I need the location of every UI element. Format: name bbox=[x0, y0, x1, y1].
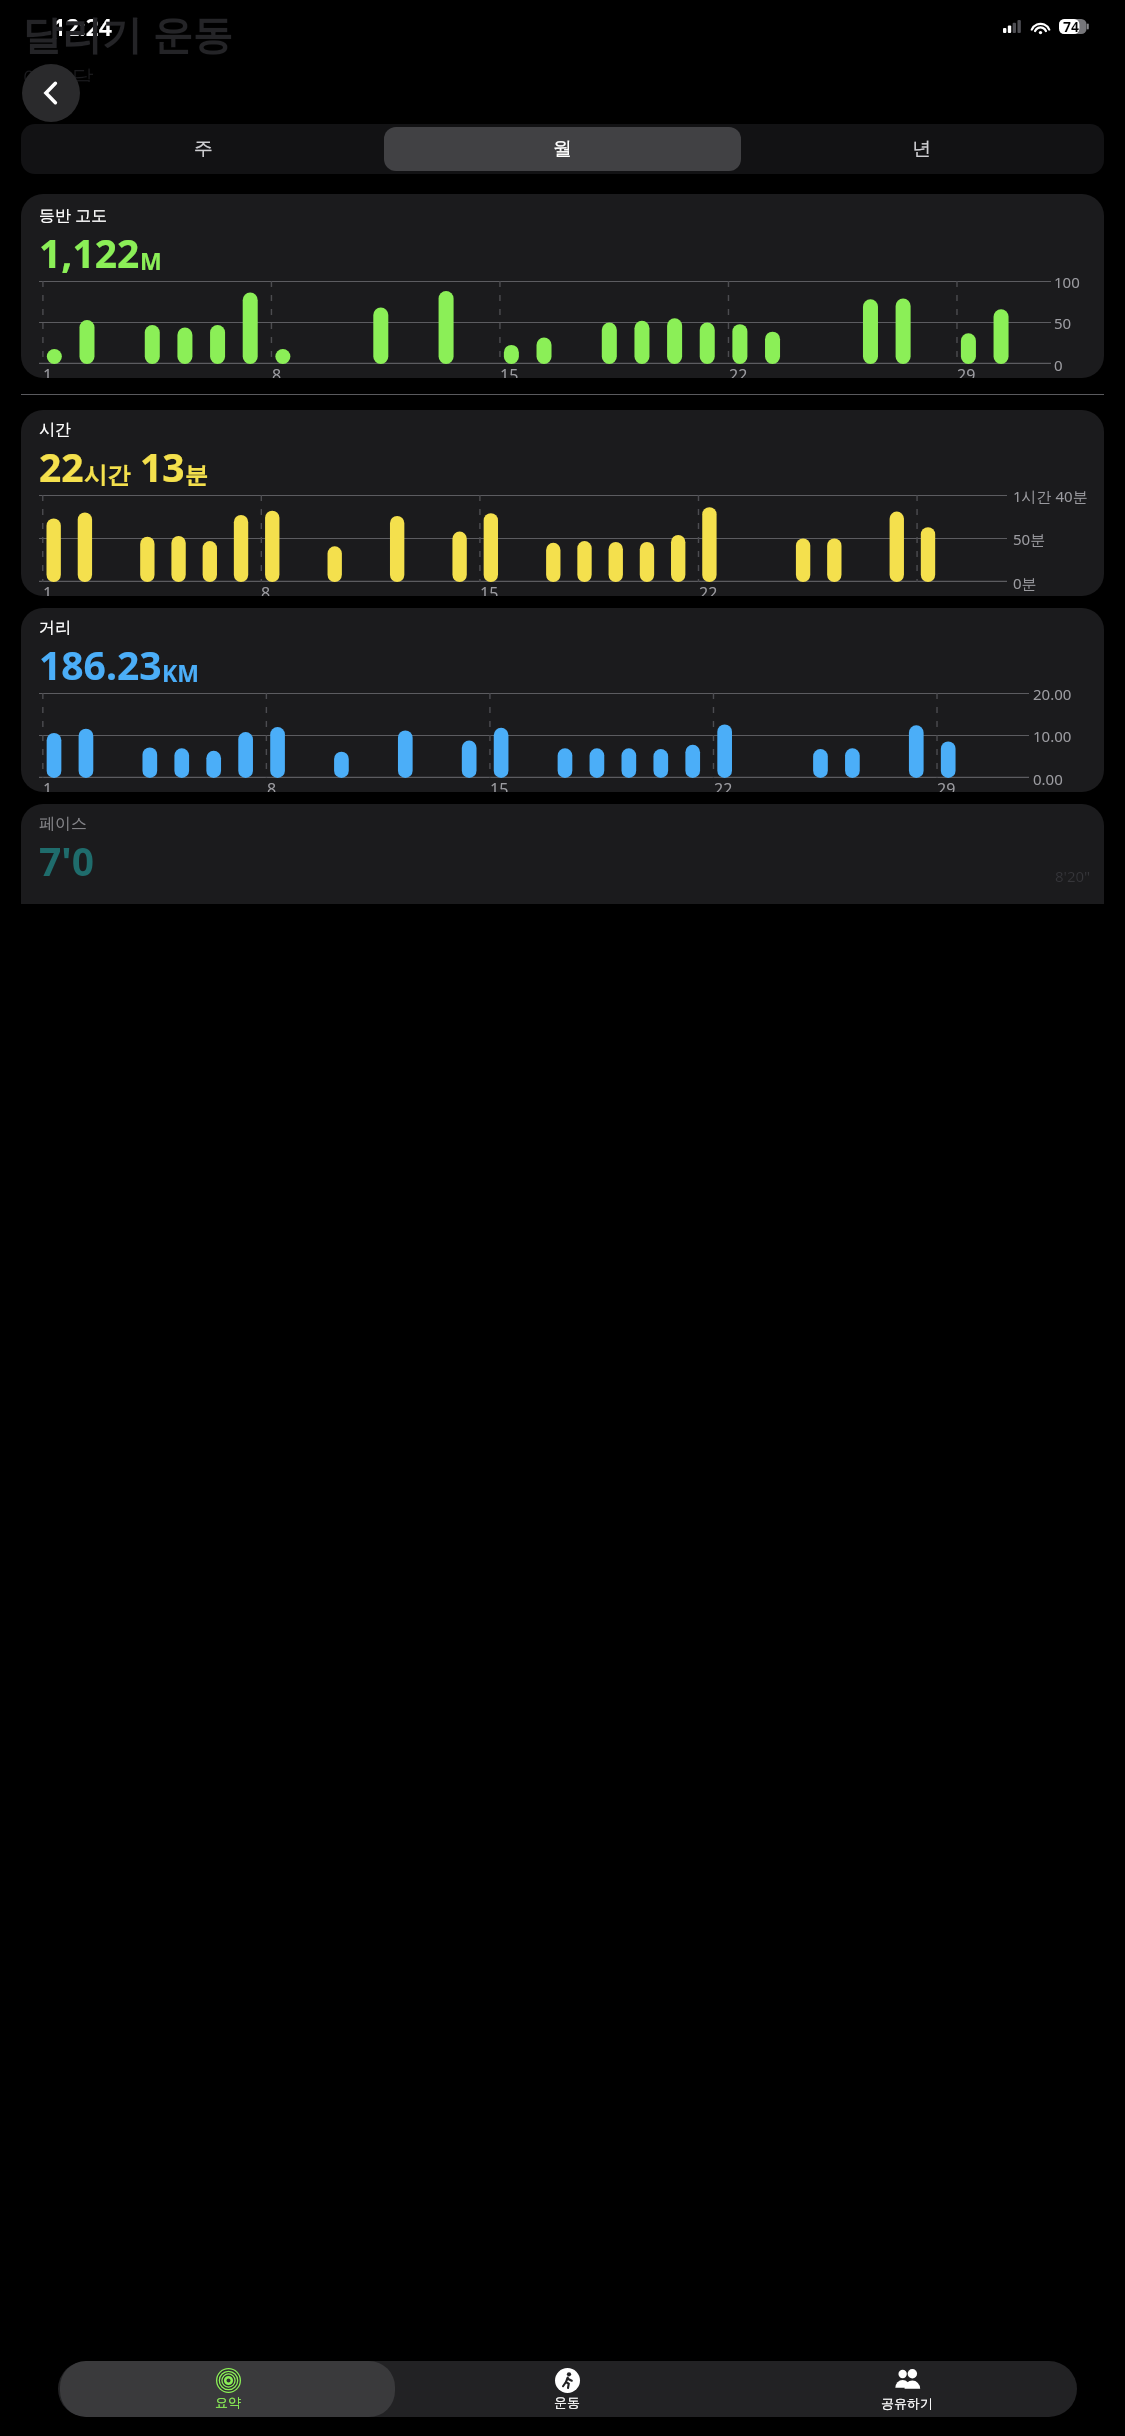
button[interactable]: 운동 bbox=[397, 2361, 737, 2417]
button[interactable]: 요약 bbox=[60, 2361, 395, 2417]
staticText: 29 bbox=[937, 778, 956, 792]
staticText: 시간 bbox=[84, 461, 130, 490]
staticText: 1 bbox=[43, 364, 53, 378]
button[interactable]: 등반 고도 bbox=[21, 194, 1104, 378]
staticText: 15 bbox=[490, 778, 509, 792]
staticText: 10.00 bbox=[1033, 726, 1072, 746]
staticText: 15 bbox=[500, 364, 519, 378]
staticText: 등반 고도 bbox=[39, 204, 108, 226]
staticText: 공유하기 bbox=[881, 2395, 933, 2411]
staticText: 74 bbox=[1063, 17, 1080, 36]
staticText: 22 bbox=[729, 364, 748, 378]
staticText: 100 bbox=[1054, 272, 1080, 292]
staticText: 186.23 bbox=[39, 638, 162, 691]
staticText: 0.00 bbox=[1033, 769, 1063, 789]
staticText: 달리기 운동 bbox=[22, 6, 233, 61]
staticText: 요약 bbox=[215, 2394, 241, 2410]
staticText: 15 bbox=[480, 582, 499, 596]
button[interactable]: 년 bbox=[743, 127, 1100, 171]
staticText: 분 bbox=[185, 461, 208, 490]
staticText: 1 bbox=[43, 778, 53, 792]
staticText: 0 bbox=[1054, 355, 1063, 375]
staticText: 페이스 bbox=[39, 814, 87, 834]
staticText: 8'20" bbox=[1055, 866, 1091, 886]
button[interactable]: 페이스 bbox=[21, 804, 1104, 904]
button[interactable]: 시간 bbox=[21, 410, 1104, 596]
staticText: 1 bbox=[43, 582, 53, 596]
staticText: 1,122 bbox=[39, 226, 140, 279]
button[interactable]: 주 bbox=[25, 127, 382, 171]
staticText: 13 bbox=[140, 440, 185, 493]
staticText: 20.00 bbox=[1033, 684, 1072, 704]
staticText: 50분 bbox=[1013, 529, 1046, 549]
staticText: 22 bbox=[699, 582, 718, 596]
staticText: 거리 bbox=[39, 618, 71, 638]
staticText: 1시간 40분 bbox=[1013, 486, 1088, 506]
staticText: 주 bbox=[194, 137, 213, 161]
staticText: 8 bbox=[267, 778, 277, 792]
staticText: 이번 달 bbox=[22, 61, 94, 82]
staticText: 운동 bbox=[554, 2394, 580, 2410]
staticText: 22 bbox=[39, 440, 84, 493]
staticText: 29 bbox=[957, 364, 976, 378]
staticText: KM bbox=[162, 657, 199, 688]
button[interactable]: 월 bbox=[384, 127, 741, 171]
staticText: 8 bbox=[261, 582, 271, 596]
staticText: 22 bbox=[714, 778, 733, 792]
staticText: 0분 bbox=[1013, 573, 1037, 593]
staticText: 8 bbox=[272, 364, 282, 378]
button[interactable]: 공유하기 bbox=[737, 2361, 1077, 2417]
button[interactable]: Back bbox=[22, 64, 80, 122]
staticText: 년 bbox=[912, 137, 931, 161]
staticText: M bbox=[140, 245, 162, 276]
staticText: 50 bbox=[1054, 313, 1072, 333]
staticText: 시간 bbox=[39, 420, 71, 440]
staticText: 7'0 bbox=[39, 834, 94, 887]
staticText: 월 bbox=[553, 137, 572, 161]
staticText: 12:24 bbox=[53, 11, 112, 42]
button[interactable]: 거리 bbox=[21, 608, 1104, 792]
